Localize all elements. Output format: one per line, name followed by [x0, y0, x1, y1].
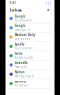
staticText: 9:41: [9, 1, 16, 5]
staticText: LinkedIn: [15, 61, 28, 65]
staticText: New jobs: [15, 65, 27, 69]
button[interactable]: Evernote: [5, 79, 54, 88]
staticText: Reminder: [15, 84, 29, 87]
staticText: Board update: [15, 56, 34, 59]
button[interactable]: LinkedIn: [5, 60, 54, 70]
button[interactable]: Google: [5, 14, 54, 23]
staticText: Medium Daily: [15, 33, 35, 37]
staticText: Notion: [15, 70, 25, 74]
staticText: New sign-in: [15, 28, 31, 31]
button[interactable]: Spotify: [5, 42, 54, 51]
staticText: Weekly digest: [15, 74, 34, 78]
staticText: Evernote: [15, 80, 27, 83]
staticText: Top stories: [15, 37, 30, 41]
button[interactable]: Notion: [5, 70, 54, 79]
button[interactable]: Google: [5, 23, 54, 33]
button[interactable]: Medium Daily: [5, 33, 54, 42]
staticText: Google: [15, 24, 26, 27]
staticText: Security alert: [15, 19, 32, 22]
staticText: Your Discover: [15, 47, 33, 50]
button[interactable]: Compose: [46, 8, 50, 12]
staticText: Google: [15, 15, 26, 18]
staticText: Trello: [15, 52, 23, 55]
staticText: | | |: [45, 1, 50, 5]
staticText: Spotify: [15, 43, 24, 46]
staticText: Inbox: [9, 7, 21, 13]
button[interactable]: Trello: [5, 51, 54, 60]
